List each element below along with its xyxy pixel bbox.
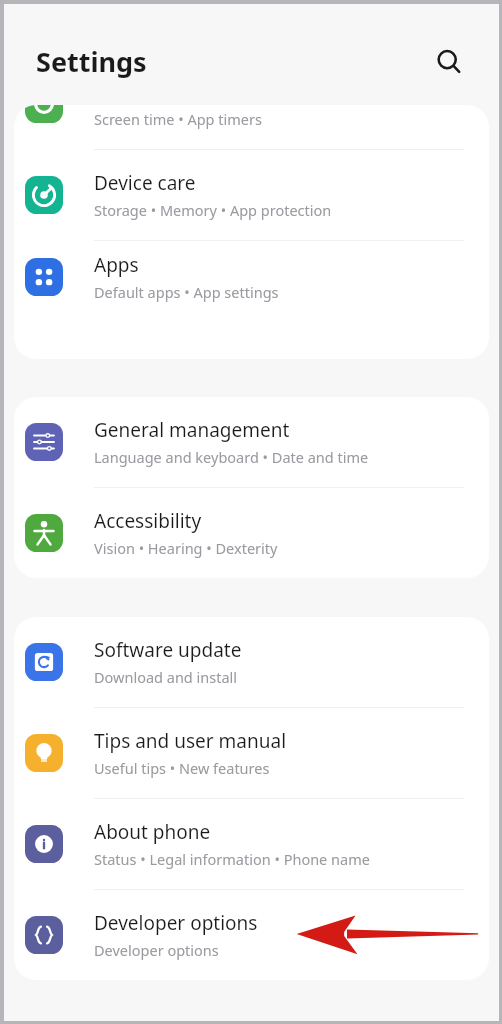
staticText: Settings (36, 43, 147, 80)
staticText: Apps (94, 252, 139, 278)
button[interactable]: Apps (14, 241, 489, 313)
staticText: About phone (94, 819, 211, 845)
button[interactable]: Tips and user manual (14, 708, 489, 798)
staticText: Vision • Hearing • Dexterity (94, 538, 278, 558)
staticText: Default apps • App settings (94, 282, 279, 302)
staticText: Status • Legal information • Phone name (94, 849, 370, 869)
staticText: Language and keyboard • Date and time (94, 447, 369, 467)
button[interactable]: Developer options (14, 890, 489, 980)
staticText: Device care (94, 170, 196, 196)
staticText: Accessibility (94, 508, 202, 534)
button[interactable]: Accessibility (14, 488, 489, 578)
staticText: Screen time • App timers (94, 109, 262, 129)
button[interactable]: Search (427, 40, 471, 84)
staticText: Software update (94, 637, 242, 663)
staticText: Download and install (94, 667, 238, 687)
staticText: Storage • Memory • App protection (94, 200, 332, 220)
button[interactable]: General management (14, 397, 489, 487)
staticText: Developer options (94, 910, 258, 936)
staticText: Developer options (94, 940, 219, 960)
button[interactable]: Software update (14, 617, 489, 707)
staticText: Useful tips • New features (94, 758, 270, 778)
button[interactable]: About phone (14, 799, 489, 889)
staticText: General management (94, 417, 290, 443)
button[interactable]: Controls (14, 105, 489, 149)
staticText: Tips and user manual (94, 728, 287, 754)
button[interactable]: Device care (14, 150, 489, 240)
